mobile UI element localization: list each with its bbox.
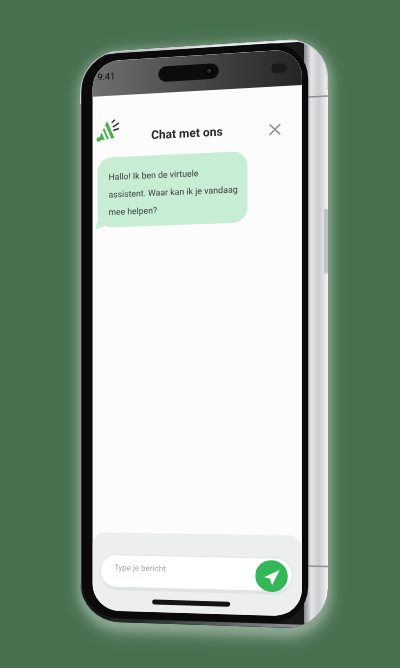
button[interactable] — [257, 555, 289, 587]
button[interactable] — [101, 548, 261, 590]
